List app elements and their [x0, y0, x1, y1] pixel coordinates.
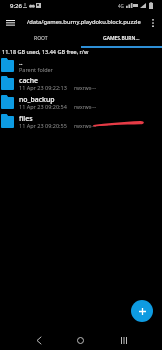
staticText: 11.18 GB used, 13.44 GB free, r/w: [2, 48, 89, 55]
staticText: Parent folder: [19, 66, 53, 73]
staticText: 11 Apr 23 09:20:55: [19, 122, 67, 129]
button[interactable]: Back: [29, 331, 48, 350]
button[interactable]: ROOT: [0, 31, 81, 45]
staticText: no_backup: [19, 95, 55, 104]
button[interactable]: Recent apps: [114, 331, 133, 350]
staticText: 4G: [118, 3, 124, 9]
staticText: GAMES.BURN…: [103, 35, 140, 42]
staticText: ..: [19, 58, 23, 67]
staticText: ROOT: [34, 35, 48, 42]
button[interactable]: Navigation drawer: [2, 15, 19, 32]
staticText: /data/games.burny.playdoku.block.puzzle: [27, 18, 141, 26]
staticText: files: [19, 114, 33, 123]
button[interactable]: cache: [0, 74, 162, 93]
staticText: 11 Apr 23 09:20:54: [19, 103, 67, 110]
staticText: 9:26: [10, 2, 22, 10]
staticText: rwxrwx---: [74, 123, 97, 130]
button[interactable]: files: [0, 112, 162, 131]
button[interactable]: Home: [71, 331, 90, 350]
button[interactable]: ..: [0, 56, 162, 75]
button[interactable]: Add: [131, 300, 153, 322]
staticText: cache: [19, 76, 38, 85]
button[interactable]: GAMES.BURN…: [81, 31, 162, 45]
staticText: 11 Apr 23 09:22:13: [19, 84, 67, 91]
button[interactable]: no_backup: [0, 93, 162, 112]
staticText: rwxrwx---: [74, 104, 97, 111]
button[interactable]: More options: [145, 15, 161, 31]
staticText: rwxrwx---: [74, 85, 97, 92]
